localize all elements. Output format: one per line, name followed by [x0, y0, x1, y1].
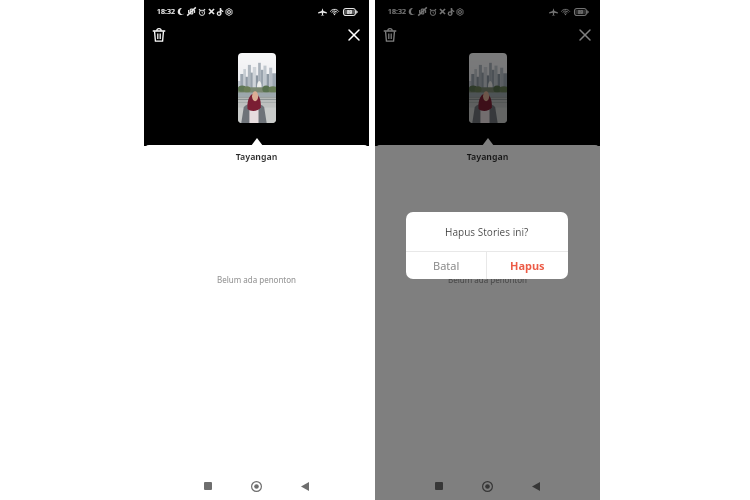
button[interactable]: Delete: [379, 24, 401, 46]
button[interactable]: Dismiss dialog: [375, 0, 600, 500]
button[interactable]: Home: [248, 478, 264, 494]
button[interactable]: Delete: [148, 24, 170, 46]
staticText: Tayangan: [375, 151, 600, 163]
button[interactable]: Recents: [200, 478, 216, 494]
staticText: 89: [578, 9, 584, 15]
button[interactable]: Recents: [431, 478, 447, 494]
button[interactable]: Batal: [406, 252, 486, 279]
button[interactable]: Hapus: [487, 252, 568, 279]
staticText: Belum ada penonton: [144, 274, 369, 285]
staticText: 18:32: [388, 7, 406, 17]
staticText: Belum ada penonton: [375, 274, 600, 285]
staticText: 18:32: [157, 7, 175, 17]
button[interactable]: Story preview: [238, 53, 276, 123]
button[interactable]: Close: [343, 24, 365, 46]
staticText: 89: [347, 9, 353, 15]
button[interactable]: Close: [574, 24, 596, 46]
button[interactable]: Home: [479, 478, 495, 494]
staticText: Hapus Stories ini?: [445, 225, 529, 239]
staticText: Hapus: [510, 258, 545, 273]
staticText: Tayangan: [144, 151, 369, 163]
button[interactable]: Story preview: [469, 53, 507, 123]
button[interactable]: Back: [297, 478, 313, 494]
staticText: Batal: [433, 258, 460, 273]
button[interactable]: Back: [528, 478, 544, 494]
